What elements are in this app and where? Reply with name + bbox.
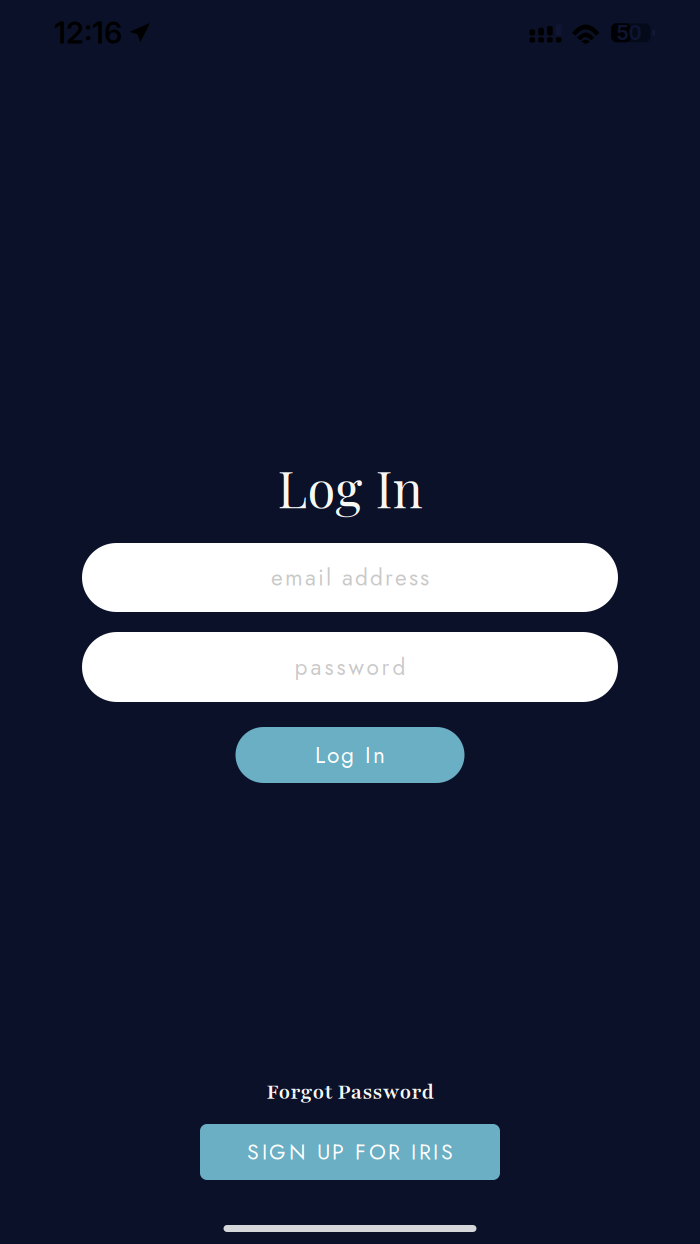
staticText: Log In <box>277 453 422 521</box>
staticText: 12:16 <box>54 15 122 50</box>
button[interactable]: Forgot Password <box>266 1078 433 1106</box>
staticText: 50 <box>616 21 641 45</box>
staticText: e m a i l a d d r e s s <box>271 561 429 594</box>
button[interactable]: L o g I n <box>235 727 464 783</box>
staticText: p a s s w o r d <box>294 651 405 683</box>
button[interactable]: p a s s w o r d <box>82 632 618 702</box>
button[interactable]: S I G N U P F O R I R I S <box>200 1124 500 1180</box>
staticText: Forgot Password <box>266 1078 433 1106</box>
staticText: S I G N U P F O R I R I S <box>247 1137 453 1167</box>
button[interactable]: e m a i l a d d r e s s <box>82 543 618 612</box>
staticText: L o g I n <box>315 739 385 771</box>
